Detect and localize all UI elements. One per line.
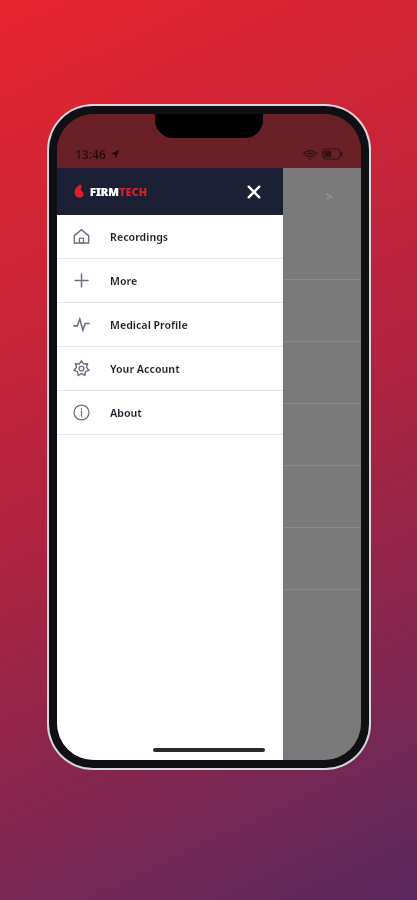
staticText: Medical Profile bbox=[110, 318, 188, 332]
staticText: Your Account bbox=[110, 362, 180, 376]
button[interactable]: Recordings bbox=[57, 215, 283, 258]
staticText: Duration bbox=[63, 424, 97, 435]
staticText: Duration bbox=[63, 238, 97, 249]
staticText: 00:07:21 bbox=[63, 373, 95, 384]
staticText: > bbox=[326, 188, 333, 204]
staticText: FIRM bbox=[90, 184, 119, 199]
staticText: 01:56:33 bbox=[63, 249, 95, 260]
staticText: 03:10:03 bbox=[63, 311, 95, 322]
staticText: TECH bbox=[119, 184, 148, 199]
button[interactable]: Your Account bbox=[57, 347, 283, 390]
button[interactable]: More bbox=[57, 259, 283, 302]
button[interactable]: About bbox=[57, 391, 283, 434]
staticText: About bbox=[110, 406, 142, 420]
staticText: Duration bbox=[63, 362, 97, 373]
staticText: More bbox=[110, 274, 138, 288]
staticText: 13:46 bbox=[75, 146, 106, 162]
button[interactable]: Medical Profile bbox=[57, 303, 283, 346]
staticText: Recordings bbox=[110, 230, 169, 244]
staticText: Duration bbox=[63, 300, 97, 311]
button[interactable]: Close menu bbox=[239, 177, 269, 207]
